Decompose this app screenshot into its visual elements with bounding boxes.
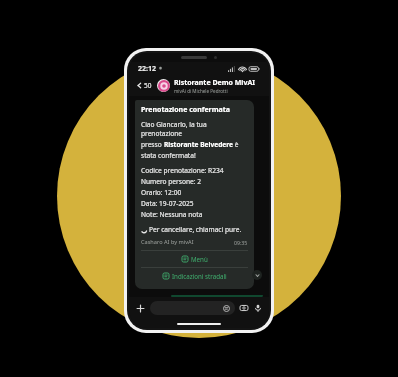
staticText: Per cancellare, chiamaci pure. (149, 225, 242, 234)
button[interactable]: Camera (238, 302, 250, 314)
button[interactable]: Indicazioni stradali (141, 268, 248, 284)
staticText: Prenotazione confermata (141, 105, 230, 115)
staticText: Indicazioni stradali (172, 272, 227, 280)
button[interactable]: Back (135, 79, 153, 92)
staticText: stata confermata! (141, 151, 196, 160)
staticText: Numero persone: 2 (141, 177, 201, 186)
button[interactable]: Prenotazione confermata (135, 100, 254, 289)
staticText: mivAi di Michele Pedrotti (174, 88, 228, 94)
staticText: Ristorante Demo MivAI (174, 78, 255, 88)
button[interactable]: Attach (134, 302, 147, 315)
staticText: Data: 19-07-2025 (141, 199, 194, 208)
staticText: Menù (191, 255, 208, 263)
staticText: presso (141, 140, 164, 149)
staticText: 22:12 (138, 64, 156, 74)
button[interactable]: Menù (141, 251, 248, 267)
staticText: Ciao Giancarlo, la tua prenotazione (141, 120, 248, 138)
staticText: Note: Nessuna nota (141, 210, 203, 219)
staticText: Ristorante Belvedere (164, 140, 233, 149)
button[interactable] (150, 301, 235, 315)
button[interactable]: Ristorante Demo MivAI (174, 78, 263, 94)
staticText: 09:35 (234, 239, 248, 246)
staticText: 50 (144, 81, 152, 90)
staticText: Casharo AI by mivAI (141, 238, 194, 246)
staticText: Codice prenotazione: R234 (141, 166, 224, 175)
staticText: è (233, 140, 239, 149)
button[interactable]: Scroll to bottom (252, 270, 262, 280)
staticText: Orario: 12:00 (141, 188, 182, 197)
button[interactable]: Voice message (252, 302, 264, 314)
